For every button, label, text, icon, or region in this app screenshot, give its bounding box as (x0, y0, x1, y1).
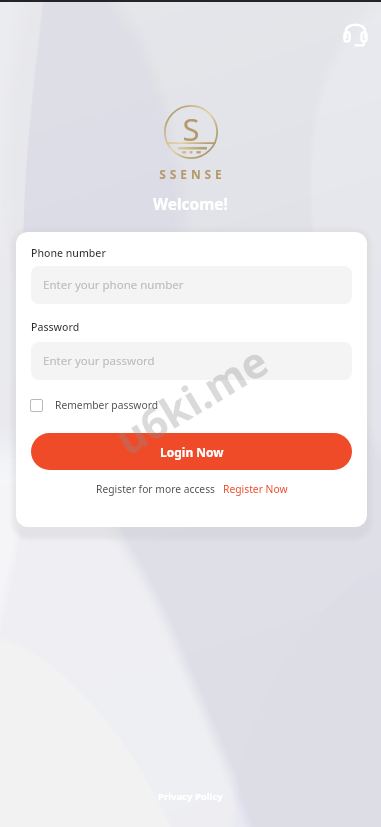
button[interactable]: Login Now (31, 433, 352, 470)
staticText: u6ki.me (105, 332, 278, 467)
button[interactable]: Enter your phone number (31, 266, 352, 304)
staticText: Welcome! (153, 193, 228, 214)
button[interactable]: Remember password (30, 398, 159, 412)
staticText: Remember password (55, 398, 159, 412)
staticText: Enter your phone number (43, 277, 184, 293)
button[interactable]: Enter your password (31, 342, 352, 380)
staticText: Enter your password (43, 353, 155, 369)
staticText: SSENSE (159, 166, 226, 182)
button[interactable]: Register Now (223, 482, 288, 496)
staticText: Password (31, 320, 80, 334)
button[interactable]: Privacy Policy (158, 790, 223, 803)
staticText: Register for more access (96, 482, 216, 496)
staticText: Login Now (160, 444, 224, 460)
staticText: S (182, 108, 200, 150)
staticText: Phone number (31, 246, 106, 260)
button[interactable]: Customer service (339, 17, 371, 49)
